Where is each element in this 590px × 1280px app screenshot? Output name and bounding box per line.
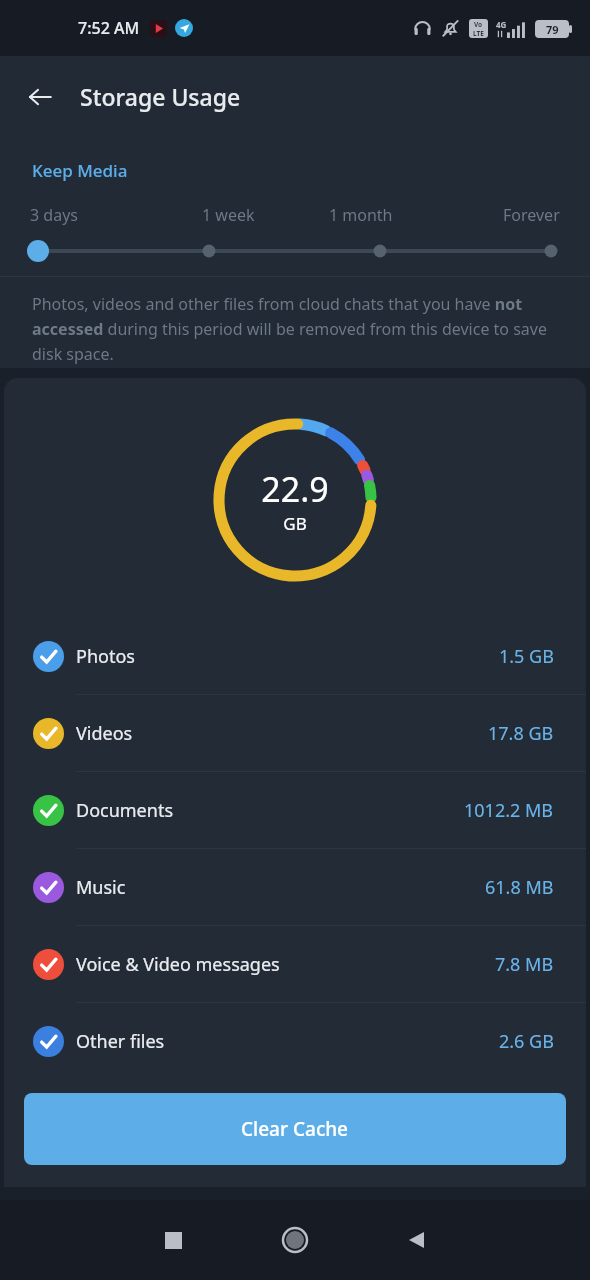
button[interactable]: Documents xyxy=(4,772,586,848)
staticText: Storage Usage xyxy=(80,81,241,112)
staticText: 1012.2 MB xyxy=(464,798,554,823)
staticText: Vo xyxy=(474,20,483,29)
button[interactable]: Voice & Video messages xyxy=(4,926,586,1002)
staticText: 1.5 GB xyxy=(499,644,554,669)
button[interactable]: Clear Cache xyxy=(24,1093,566,1165)
staticText: Documents xyxy=(76,798,174,823)
staticText: Forever xyxy=(503,204,560,226)
staticText: Voice & Video messages xyxy=(76,952,280,977)
staticText: Photos xyxy=(76,644,135,669)
staticText: 17.8 GB xyxy=(488,721,554,746)
button[interactable]: Back xyxy=(14,71,66,123)
staticText: GB xyxy=(283,512,307,535)
staticText: LTE xyxy=(473,29,484,38)
staticText: 4G xyxy=(496,19,507,30)
button[interactable]: Music xyxy=(4,849,586,925)
staticText: 1 week xyxy=(202,204,255,226)
staticText: Keep Media xyxy=(32,159,128,182)
staticText: Clear Cache xyxy=(241,1116,349,1142)
staticText: 22.9 xyxy=(261,466,329,512)
staticText: 1 month xyxy=(329,204,393,226)
staticText: Other files xyxy=(76,1029,165,1054)
staticText: 7:52 AM xyxy=(78,17,140,39)
button[interactable]: Photos xyxy=(4,618,586,694)
button[interactable]: Back xyxy=(385,1208,449,1272)
button[interactable]: Other files xyxy=(4,1003,586,1079)
button[interactable]: Videos xyxy=(4,695,586,771)
button[interactable]: Recent apps xyxy=(141,1208,205,1272)
button[interactable]: Home xyxy=(263,1208,327,1272)
staticText: 3 days xyxy=(30,204,78,226)
staticText: Music xyxy=(76,875,126,900)
button[interactable] xyxy=(0,238,590,264)
staticText: 2.6 GB xyxy=(499,1029,554,1054)
staticText: 61.8 MB xyxy=(485,875,554,900)
staticText: Videos xyxy=(76,721,133,746)
staticText: Photos, videos and other files from clou… xyxy=(32,293,558,364)
staticText: 79 xyxy=(546,22,559,37)
staticText: 7.8 MB xyxy=(495,952,554,977)
